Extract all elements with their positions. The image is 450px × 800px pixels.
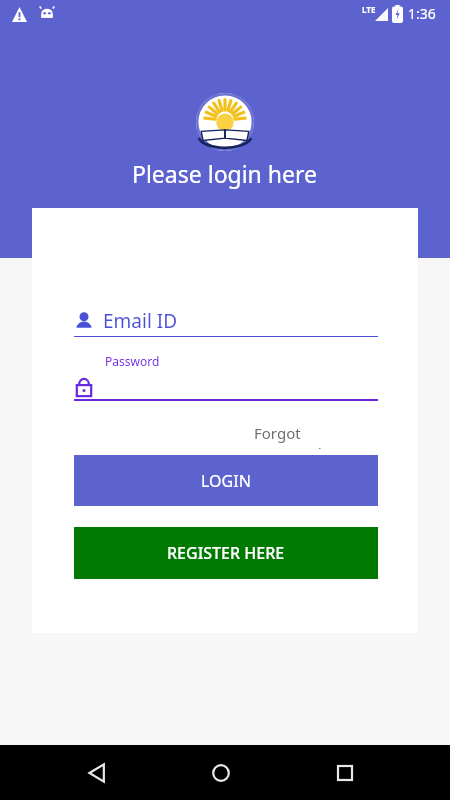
staticText: LTE xyxy=(362,4,376,15)
button[interactable]: Email ID xyxy=(74,305,378,337)
button[interactable]: REGISTER HERE xyxy=(74,527,378,579)
staticText: Forgot Password? xyxy=(254,423,378,449)
button[interactable]: Forgot Password? xyxy=(254,423,378,449)
staticText: Please login here xyxy=(132,158,318,189)
other: Recents xyxy=(337,765,353,781)
other: Password xyxy=(74,375,94,399)
other: Back xyxy=(88,764,106,782)
staticText: 1:36 xyxy=(408,4,436,23)
staticText: LOGIN xyxy=(201,470,251,492)
staticText: Password xyxy=(105,353,160,369)
other: Home xyxy=(212,764,230,782)
staticText: Email ID xyxy=(103,308,178,334)
button[interactable]: Password xyxy=(74,374,378,400)
staticText: REGISTER HERE xyxy=(167,542,285,564)
button[interactable]: LOGIN xyxy=(74,455,378,506)
